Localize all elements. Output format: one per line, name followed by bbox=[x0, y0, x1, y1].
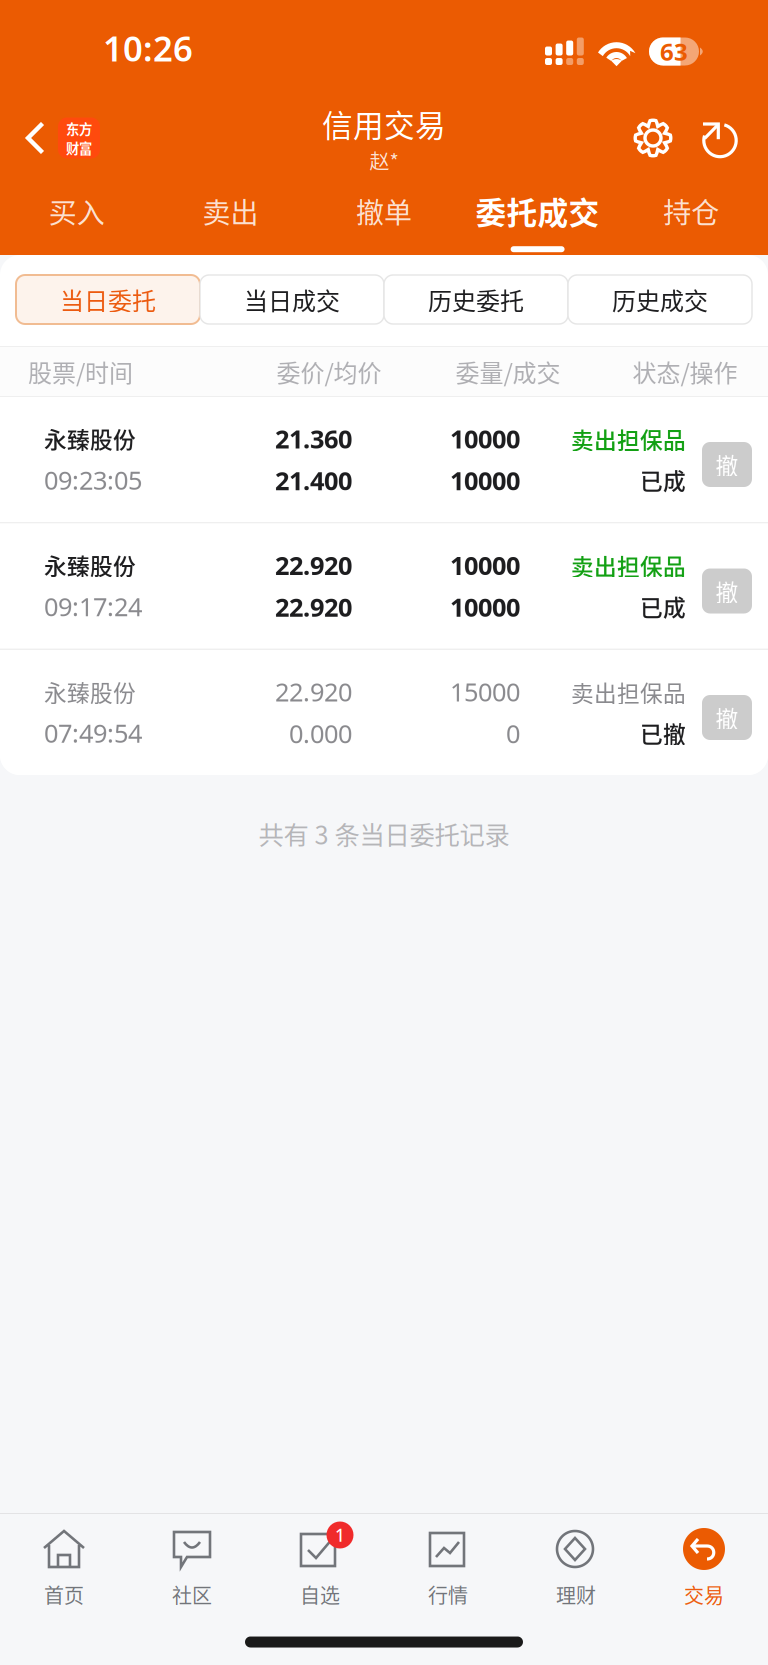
button[interactable]: 社区 bbox=[128, 1514, 256, 1619]
staticText: 15000 bbox=[450, 675, 520, 708]
staticText: 22.920 bbox=[275, 548, 352, 582]
staticText: 撤 bbox=[715, 575, 738, 607]
staticText: 共有 3 条当日委托记录 bbox=[258, 815, 509, 852]
staticText: 状态/操作 bbox=[632, 354, 737, 389]
staticText: 永臻股份 bbox=[44, 422, 136, 455]
staticText: 持仓 bbox=[663, 191, 719, 231]
staticText: 委托成交 bbox=[476, 189, 600, 233]
staticText: 自选 bbox=[300, 1580, 340, 1609]
button[interactable]: 持仓 bbox=[614, 180, 768, 255]
staticText: 22.920 bbox=[275, 590, 352, 624]
staticText: 东方 bbox=[66, 119, 92, 138]
staticText: 理财 bbox=[556, 1580, 596, 1609]
staticText: 当日成交 bbox=[244, 282, 340, 317]
staticText: 历史委托 bbox=[428, 282, 524, 317]
button[interactable]: 刷新 bbox=[688, 107, 750, 169]
staticText: 撤 bbox=[715, 448, 738, 481]
button[interactable]: 返回 bbox=[0, 99, 100, 177]
button[interactable]: 1 bbox=[256, 1514, 384, 1619]
button[interactable]: 委托成交 bbox=[461, 180, 614, 255]
staticText: 社区 bbox=[172, 1580, 212, 1609]
staticText: 信用交易 bbox=[322, 101, 446, 146]
staticText: 撤单 bbox=[356, 191, 412, 231]
staticText: 卖出担保品 bbox=[571, 676, 686, 708]
staticText: 赵* bbox=[369, 146, 398, 175]
staticText: 永臻股份 bbox=[44, 675, 136, 708]
button[interactable]: 买入 bbox=[0, 180, 154, 255]
staticText: 委量/成交 bbox=[455, 354, 560, 389]
staticText: 已撤 bbox=[640, 716, 686, 749]
staticText: 财富 bbox=[66, 138, 92, 157]
button[interactable]: 永臻股份 bbox=[0, 650, 768, 775]
staticText: 10000 bbox=[450, 422, 520, 455]
staticText: 21.360 bbox=[275, 422, 352, 455]
staticText: 已成 bbox=[640, 463, 686, 496]
staticText: 21.400 bbox=[275, 463, 352, 497]
button[interactable]: 当日成交 bbox=[200, 275, 384, 324]
staticText: 0 bbox=[506, 716, 520, 750]
button[interactable]: 设置 bbox=[622, 107, 684, 169]
staticText: 22.920 bbox=[275, 675, 352, 708]
button[interactable]: 行情 bbox=[384, 1514, 512, 1619]
staticText: 63 bbox=[660, 36, 688, 67]
button[interactable]: 交易 bbox=[640, 1514, 768, 1619]
staticText: 买入 bbox=[49, 191, 105, 231]
staticText: 07:49:54 bbox=[44, 716, 142, 750]
staticText: 10000 bbox=[450, 548, 520, 582]
staticText: 永臻股份 bbox=[44, 549, 136, 582]
staticText: 委价/均价 bbox=[276, 354, 381, 389]
staticText: 卖出担保品 bbox=[571, 423, 686, 455]
button[interactable]: 当日委托 bbox=[16, 275, 200, 324]
staticText: 10:26 bbox=[103, 25, 193, 71]
staticText: 1 bbox=[335, 1523, 345, 1546]
staticText: 股票/时间 bbox=[28, 354, 133, 389]
button[interactable]: 理财 bbox=[512, 1514, 640, 1619]
staticText: 卖出 bbox=[202, 191, 258, 231]
staticText: 首页 bbox=[44, 1580, 84, 1609]
staticText: 09:23:05 bbox=[44, 463, 142, 497]
button[interactable]: 历史成交 bbox=[568, 275, 752, 324]
staticText: 10000 bbox=[450, 463, 520, 497]
button[interactable]: 撤单 bbox=[307, 180, 461, 255]
staticText: 行情 bbox=[428, 1580, 468, 1609]
staticText: 交易 bbox=[684, 1580, 724, 1609]
staticText: 已成 bbox=[640, 590, 686, 623]
button[interactable]: 卖出 bbox=[154, 180, 307, 255]
staticText: 10000 bbox=[450, 590, 520, 624]
staticText: 撤 bbox=[715, 701, 738, 734]
staticText: 当日委托 bbox=[60, 282, 156, 317]
staticText: 卖出担保品 bbox=[571, 549, 686, 582]
staticText: 历史成交 bbox=[612, 282, 708, 317]
button[interactable]: 历史委托 bbox=[384, 275, 568, 324]
button[interactable]: 永臻股份 bbox=[0, 397, 768, 522]
button[interactable]: 永臻股份 bbox=[0, 523, 768, 648]
staticText: 09:17:24 bbox=[44, 590, 142, 623]
button[interactable]: 首页 bbox=[0, 1514, 128, 1619]
staticText: 0.000 bbox=[289, 716, 352, 750]
